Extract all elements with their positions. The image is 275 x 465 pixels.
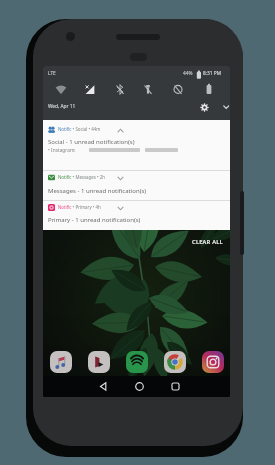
staticText: Wed, Apr 11 [48, 103, 76, 110]
button[interactable] [88, 351, 110, 373]
staticText: CLEAR ALL [192, 238, 223, 246]
staticText: Notific • Messages • 2h [58, 174, 105, 180]
staticText: 8:31 PM [203, 70, 222, 77]
staticText: Notific • Primary • 4h [58, 204, 101, 210]
button[interactable]: Notific • Social • 44m [43, 120, 230, 170]
button[interactable] [164, 351, 186, 373]
staticText: Messages - 1 unread notification(s) [48, 187, 147, 195]
button[interactable]: Notific • Primary • 4h [43, 201, 230, 230]
button[interactable] [171, 382, 180, 391]
button[interactable] [50, 351, 72, 373]
staticText: LTE [48, 70, 56, 77]
staticText: 44% [183, 70, 193, 77]
button[interactable] [99, 382, 108, 391]
staticText: Primary - 1 unread notification(s) [48, 216, 141, 224]
button[interactable]: Notific • Messages • 2h [43, 171, 230, 200]
button[interactable] [126, 351, 148, 373]
button[interactable] [202, 351, 224, 373]
staticText: • Instagram: [48, 147, 76, 154]
button[interactable] [135, 382, 144, 391]
staticText: Notific • Social • 44m [58, 126, 101, 132]
staticText: Social - 1 unread notification(s) [48, 138, 135, 146]
button[interactable] [43, 66, 230, 120]
